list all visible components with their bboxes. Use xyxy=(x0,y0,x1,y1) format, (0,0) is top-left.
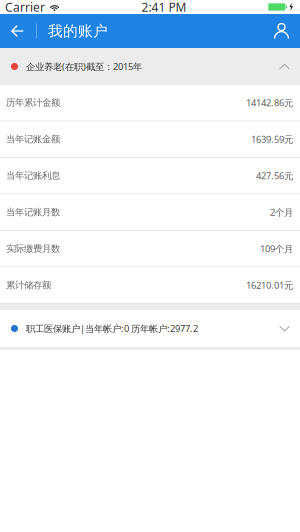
staticText: 当年记账月数 xyxy=(6,206,60,218)
staticText: 16210.01元 xyxy=(246,279,293,291)
staticText: 实际缴费月数 xyxy=(6,243,60,254)
staticText: Carrier xyxy=(5,0,45,15)
staticText: 我的账户 xyxy=(48,22,108,40)
staticText: 职工医保账户|当年帐户:0 历年帐户:2977.2 xyxy=(26,322,198,335)
staticText: 当年记账金额 xyxy=(6,133,60,145)
button[interactable]: Account xyxy=(273,14,300,48)
staticText: 1639.59元 xyxy=(251,133,293,145)
staticText: 当年记账利息 xyxy=(6,170,60,181)
staticText: 14142.86元 xyxy=(246,97,293,109)
staticText: 427.56元 xyxy=(256,170,293,182)
staticText: 历年累计金额 xyxy=(6,97,60,108)
button[interactable]: 职工医保账户|当年帐户:0 历年帐户:2977.2 xyxy=(0,310,300,347)
button[interactable]: Back xyxy=(0,14,36,48)
button[interactable]: 企业养老(在职)截至：2015年 xyxy=(0,48,300,85)
staticText: 企业养老(在职)截至：2015年 xyxy=(26,60,142,73)
staticText: 2:41 PM xyxy=(142,0,187,15)
staticText: 累计储存额 xyxy=(6,279,51,291)
staticText: 2个月 xyxy=(270,206,293,218)
staticText: 109个月 xyxy=(260,243,293,255)
